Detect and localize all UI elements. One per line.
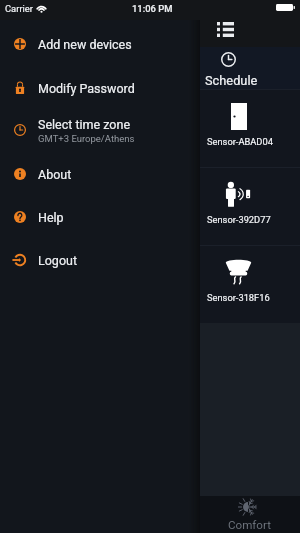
button[interactable]: Select time zone (0, 108, 300, 152)
staticText: Comfort (228, 518, 271, 532)
button[interactable]: Modify Password (0, 68, 300, 108)
button[interactable]: Schedule (200, 47, 300, 89)
button[interactable]: Menu (200, 0, 300, 47)
staticText: Sensor-318F16 (207, 292, 270, 303)
button[interactable]: Sensor-318F16 (200, 246, 300, 323)
staticText: Help (38, 210, 64, 225)
staticText: 11:06 PM (132, 3, 173, 14)
button[interactable]: Comfort (200, 496, 300, 533)
button[interactable]: Add new devices (0, 24, 300, 64)
staticText: Sensor-ABAD04 (207, 136, 273, 147)
staticText: Modify Password (38, 81, 135, 96)
staticText: Sensor-392D77 (207, 214, 271, 225)
staticText: Carrier (5, 3, 34, 14)
button[interactable]: Help (0, 197, 300, 237)
button[interactable]: Sensor-392D77 (200, 168, 300, 245)
staticText: About (38, 167, 72, 182)
button[interactable]: About (0, 154, 300, 194)
button[interactable]: Sensor-ABAD04 (200, 90, 300, 167)
staticText: Add new devices (38, 37, 132, 52)
staticText: Logout (38, 253, 77, 268)
button[interactable]: Logout (0, 240, 300, 280)
staticText: GMT+3 Europe/Athens (38, 133, 135, 144)
staticText: Schedule (205, 73, 258, 88)
staticText: Select time zone (38, 117, 131, 132)
